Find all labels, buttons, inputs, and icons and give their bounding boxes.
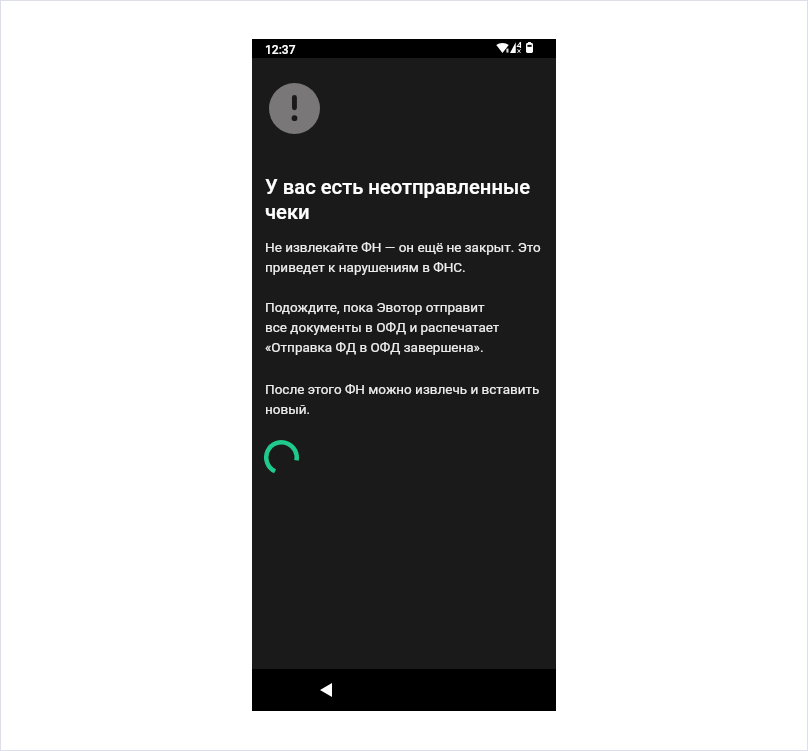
- staticText: После этого ФН можно извлечь и вставить …: [265, 378, 547, 418]
- staticText: Не извлекайте ФН — он ещё не закрыт. Это…: [265, 236, 547, 276]
- staticText: 12:37: [265, 44, 296, 57]
- button[interactable]: Back: [307, 671, 345, 709]
- staticText: У вас есть неотправленные чеки: [265, 174, 546, 224]
- staticText: Подождите, пока Эвотор отправит все доку…: [265, 296, 500, 356]
